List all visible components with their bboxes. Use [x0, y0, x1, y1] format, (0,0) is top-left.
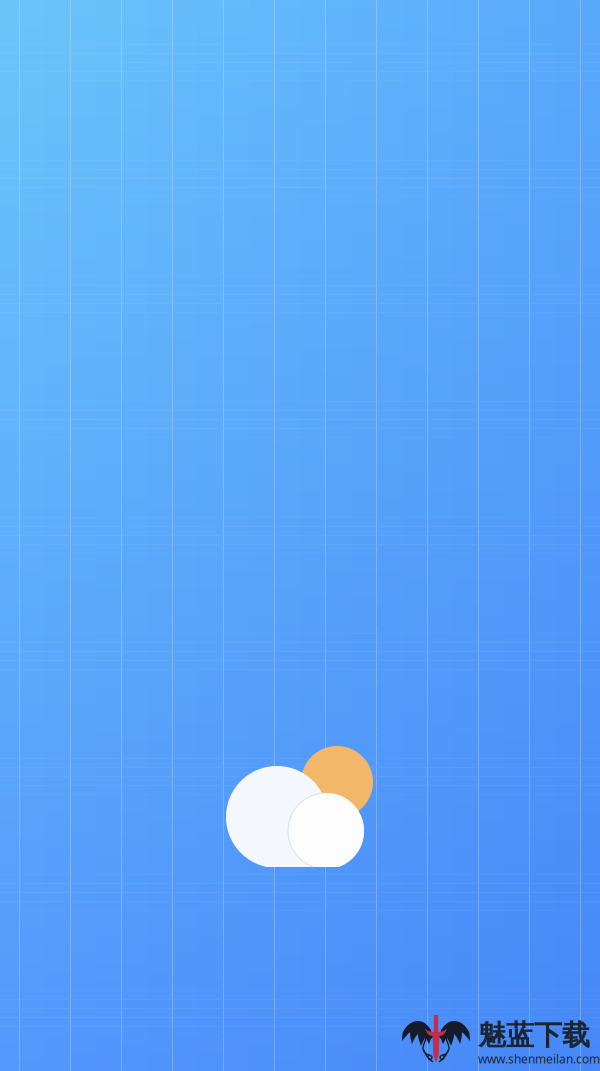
staticText: 魅蓝下载: [478, 1018, 590, 1052]
button[interactable]: 魅蓝下载 www.shenmeilan.com: [0, 0, 600, 1071]
staticText: www.shenmeilan.com: [478, 1051, 600, 1067]
